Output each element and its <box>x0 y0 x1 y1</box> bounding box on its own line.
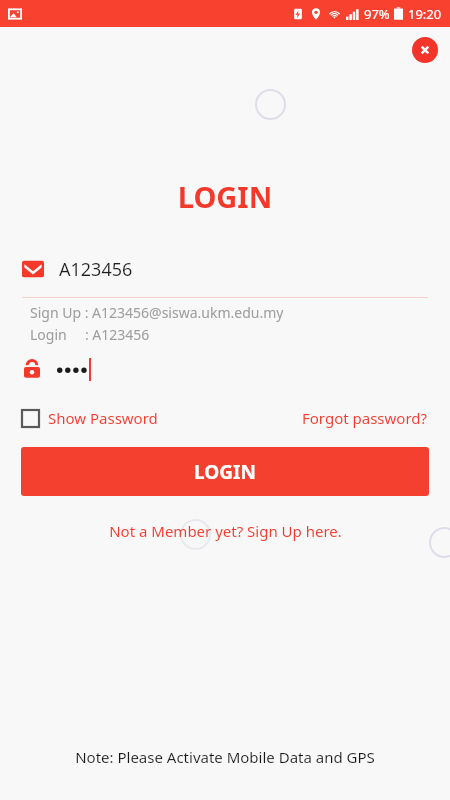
staticText: Sign Up : A123456@siswa.ukm.edu.my <box>30 303 284 322</box>
button[interactable]: LOGIN <box>21 447 429 496</box>
staticText: Login : A123456 <box>30 325 150 344</box>
staticText: 97% <box>364 5 390 23</box>
button[interactable]: Show Password <box>22 408 158 428</box>
staticText: LOGIN <box>194 459 256 485</box>
button[interactable]: A123456 <box>22 254 428 284</box>
button[interactable] <box>22 353 428 385</box>
staticText: 19:20 <box>408 5 442 23</box>
staticText: Show Password <box>48 408 158 428</box>
button[interactable]: Close <box>412 37 438 63</box>
staticText: LOGIN <box>0 177 450 216</box>
staticText: A123456 <box>59 257 133 282</box>
staticText: Note: Please Activate Mobile Data and GP… <box>0 747 450 767</box>
button[interactable]: Forgot password? <box>302 406 428 430</box>
button[interactable]: Not a Member yet? Sign Up here. <box>101 518 350 544</box>
